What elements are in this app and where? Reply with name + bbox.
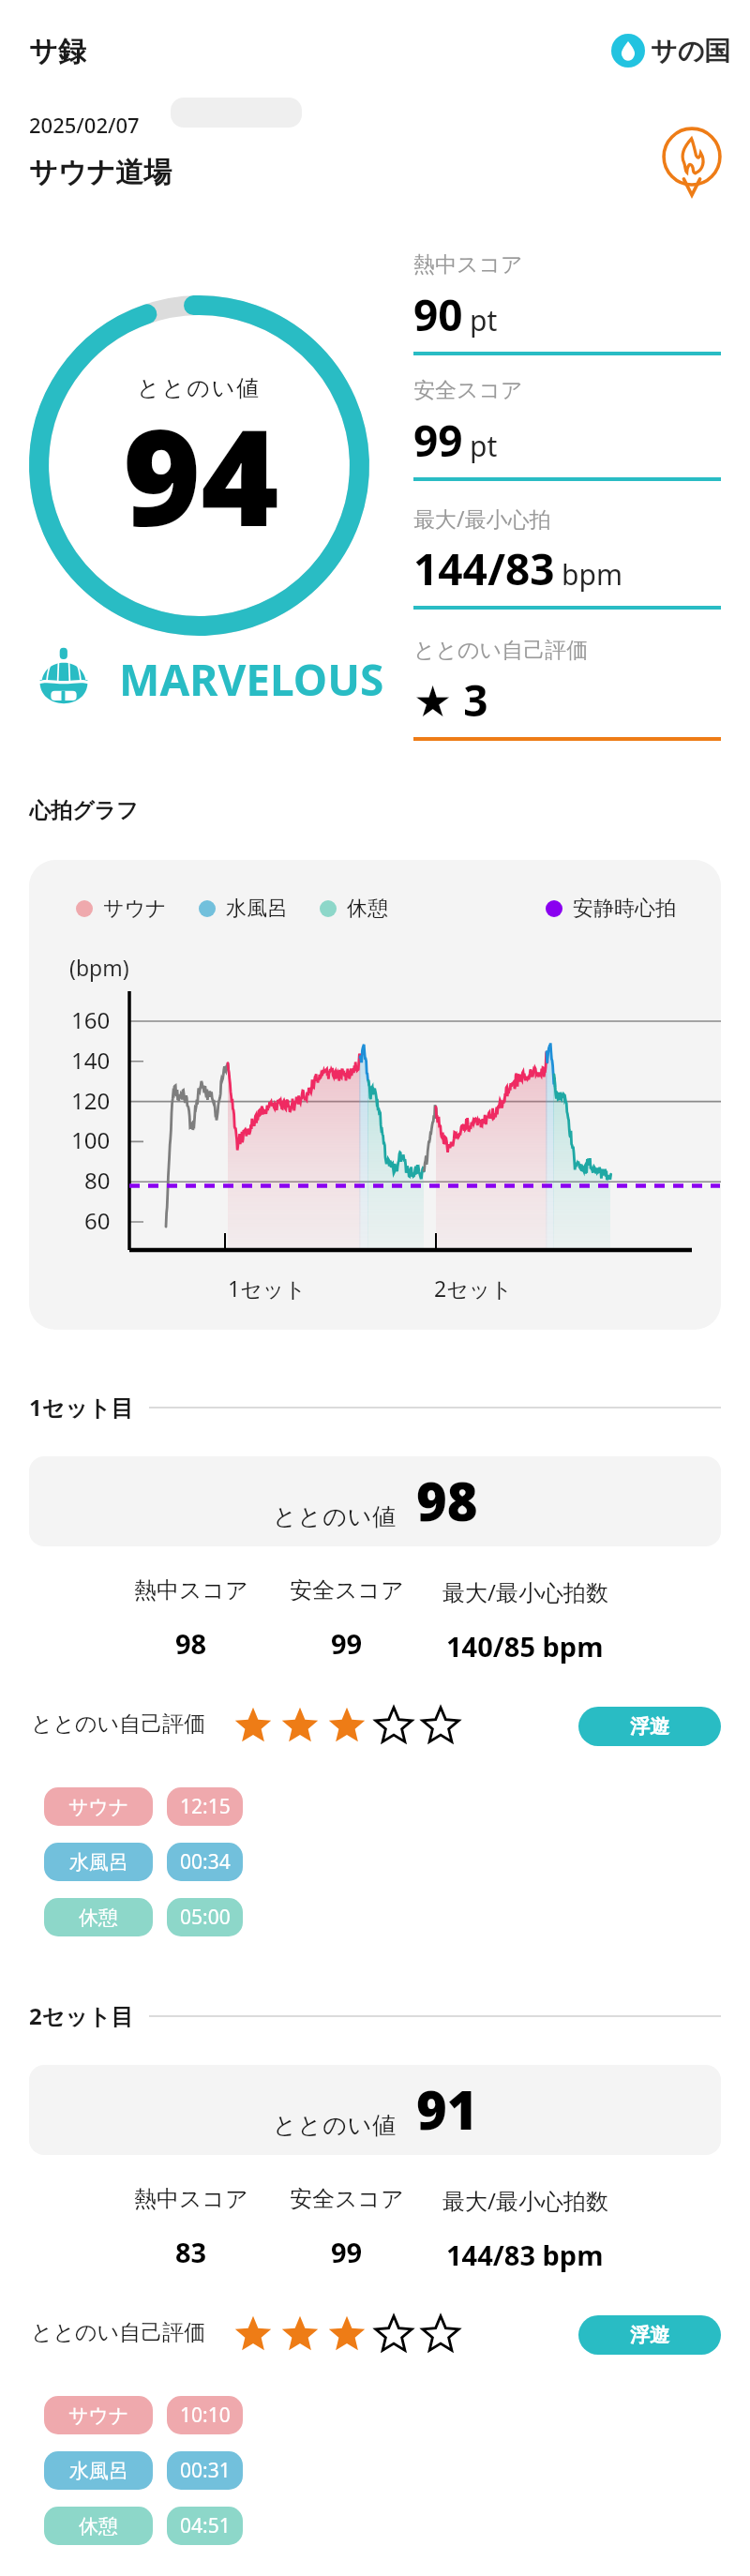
staticText: 00:34 — [180, 1848, 231, 1876]
staticText: サウナ道場 — [29, 155, 172, 190]
staticText: ととのい値 — [273, 2111, 397, 2140]
staticText: 熱中スコア — [134, 1576, 248, 1604]
staticText: サの国 — [651, 35, 731, 68]
staticText: 98 — [416, 1465, 478, 1536]
button[interactable]: 浮遊 — [578, 1707, 721, 1746]
button[interactable]: 10:10 — [167, 2396, 243, 2434]
staticText: サ録 — [29, 34, 86, 69]
staticText: サウナ — [103, 896, 167, 922]
staticText: 1セット — [228, 1273, 307, 1303]
button[interactable]: サの国 — [611, 34, 731, 68]
staticText: 最大/最小心拍数 — [442, 1576, 608, 1607]
staticText: 144/83 — [413, 539, 555, 598]
staticText: 80 — [84, 1165, 111, 1196]
staticText: 140/85 bpm — [446, 1628, 604, 1665]
staticText: サウナ — [68, 2403, 129, 2428]
staticText: 160 — [71, 1004, 111, 1035]
staticText: 安全スコア — [290, 1576, 404, 1604]
staticText: 休憩 — [79, 1906, 118, 1930]
staticText: 05:00 — [180, 1904, 231, 1931]
staticText: 最大/最小心拍 — [413, 504, 551, 533]
staticText: 83 — [175, 2234, 207, 2270]
staticText: 94 — [123, 384, 279, 565]
staticText: 安静時心拍 — [573, 896, 676, 922]
staticText: 安全スコア — [290, 2185, 404, 2213]
button[interactable]: サウナ — [44, 2396, 153, 2434]
staticText: 144/83 bpm — [446, 2237, 604, 2273]
button[interactable]: 05:00 — [167, 1898, 243, 1936]
staticText: ととのい値 — [273, 1502, 397, 1531]
button[interactable]: 04:51 — [167, 2507, 243, 2545]
button[interactable]: サウナ道場 — [29, 155, 172, 190]
staticText: 60 — [84, 1205, 111, 1236]
staticText: pt — [470, 427, 498, 465]
button[interactable]: 熱中度 — [653, 123, 730, 200]
staticText: 10:10 — [180, 2402, 231, 2429]
staticText: 水風呂 — [69, 2459, 128, 2483]
staticText: 12:15 — [180, 1793, 231, 1820]
staticText: 00:31 — [180, 2457, 231, 2484]
staticText: 91 — [416, 2073, 478, 2145]
button[interactable]: 休憩 — [44, 1898, 153, 1936]
button[interactable]: 12:15 — [167, 1787, 243, 1826]
staticText: 90 — [413, 285, 463, 344]
staticText: 休憩 — [79, 2514, 118, 2538]
staticText: 熱中スコア — [134, 2185, 248, 2213]
staticText: 100 — [71, 1124, 111, 1155]
staticText: 最大/最小心拍数 — [442, 2185, 608, 2216]
staticText: pt — [470, 301, 498, 339]
staticText: 水風呂 — [226, 896, 288, 922]
button[interactable]: 浮遊 — [578, 2315, 721, 2355]
button[interactable]: 00:34 — [167, 1843, 243, 1881]
staticText: ととのい自己評価 — [413, 637, 589, 664]
button[interactable]: 休憩 — [44, 2507, 153, 2545]
staticText: 2セット目 — [29, 2000, 134, 2031]
staticText: 休憩 — [347, 896, 388, 922]
staticText: 浮遊 — [630, 2323, 669, 2347]
button[interactable]: 水風呂 — [44, 1843, 153, 1881]
staticText: MARVELOUS — [119, 650, 384, 709]
staticText: 熱中スコア — [413, 251, 523, 279]
staticText: 98 — [175, 1625, 207, 1662]
staticText: サウナ — [68, 1795, 129, 1819]
staticText: 99 — [331, 1625, 363, 1662]
button[interactable]: ととのい値 — [29, 1456, 721, 1546]
staticText: 99 — [413, 411, 463, 470]
button[interactable]: 水風呂 — [44, 2451, 153, 2490]
staticText: ととのい値 — [137, 374, 262, 402]
staticText: 2セット — [434, 1273, 513, 1303]
staticText: 安全スコア — [413, 377, 523, 404]
button[interactable]: サ録 — [29, 34, 86, 69]
staticText: ととのい自己評価 — [31, 2319, 206, 2346]
staticText: 140 — [71, 1045, 111, 1076]
staticText: 120 — [71, 1085, 111, 1116]
staticText: 99 — [331, 2234, 363, 2270]
staticText: (bpm) — [69, 953, 129, 982]
staticText: 1セット目 — [29, 1392, 134, 1423]
staticText: ★ 3 — [413, 670, 488, 730]
button[interactable]: サウナ — [44, 1787, 153, 1826]
staticText: bpm — [562, 555, 622, 594]
button[interactable]: 00:31 — [167, 2451, 243, 2490]
button[interactable]: ととのい値 — [29, 2065, 721, 2155]
staticText: 浮遊 — [630, 1714, 669, 1739]
staticText: 心拍グラフ — [29, 797, 139, 824]
staticText: 04:51 — [180, 2512, 231, 2539]
staticText: ととのい自己評価 — [31, 1710, 206, 1738]
staticText: 2025/02/07 — [29, 111, 140, 139]
staticText: 水風呂 — [69, 1850, 128, 1875]
